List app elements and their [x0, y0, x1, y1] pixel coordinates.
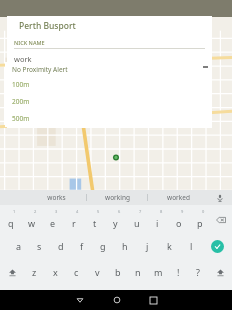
button[interactable]: Shift	[208, 259, 232, 285]
staticText: j	[146, 240, 149, 252]
button[interactable]: h	[114, 233, 136, 259]
button[interactable]: Space	[50, 285, 166, 307]
button[interactable]: ?	[188, 259, 208, 285]
button[interactable]: working	[87, 190, 147, 205]
staticText: g	[100, 240, 106, 252]
button[interactable]: ?123	[0, 285, 30, 307]
staticText: u	[134, 217, 140, 229]
staticText: ?	[196, 266, 200, 278]
staticText: 1	[13, 209, 16, 214]
button[interactable]: m	[148, 259, 168, 285]
staticText: 3	[55, 209, 58, 214]
staticText: 8	[160, 209, 163, 214]
staticText: k	[167, 240, 172, 252]
button[interactable]: Back	[61, 290, 98, 310]
staticText: y	[113, 217, 118, 229]
button[interactable]: f	[71, 233, 92, 259]
staticText: s	[37, 240, 42, 252]
button[interactable]: z	[24, 259, 45, 285]
staticText: e	[50, 217, 56, 229]
button[interactable]: j	[136, 233, 158, 259]
button[interactable]: a	[8, 233, 29, 259]
button[interactable]: Home	[98, 290, 135, 310]
staticText: c	[74, 266, 79, 278]
button[interactable]: 2	[21, 207, 42, 233]
button[interactable]: d	[50, 233, 71, 259]
button[interactable]: Emoji	[166, 285, 188, 307]
staticText: l	[190, 240, 193, 252]
button[interactable]: .	[188, 285, 204, 307]
staticText: a	[16, 240, 22, 252]
staticText: q	[8, 217, 14, 229]
staticText: working	[105, 193, 130, 202]
button[interactable]: c	[66, 259, 87, 285]
staticText: 9	[181, 209, 184, 214]
button[interactable]: 9	[168, 207, 189, 233]
staticText: n	[135, 266, 141, 278]
button[interactable]: works	[26, 190, 86, 205]
button[interactable]: 1	[0, 207, 21, 233]
button[interactable]: 3	[42, 207, 63, 233]
staticText: z	[32, 266, 37, 278]
button[interactable]: n	[128, 259, 148, 285]
button[interactable]: Shift	[0, 259, 24, 285]
button[interactable]: ,	[30, 285, 50, 307]
staticText: p	[197, 217, 203, 229]
staticText: 200m	[12, 97, 30, 106]
staticText: works	[47, 193, 66, 202]
button[interactable]: v	[87, 259, 108, 285]
button[interactable]: Enter	[202, 233, 232, 259]
button[interactable]: x	[45, 259, 66, 285]
button[interactable]: worked	[148, 190, 208, 205]
staticText: 5	[97, 209, 100, 214]
staticText: v	[95, 266, 100, 278]
staticText: 7	[139, 209, 142, 214]
staticText: h	[122, 240, 128, 252]
staticText: 6	[118, 209, 121, 214]
button[interactable]: g	[92, 233, 114, 259]
staticText: !	[177, 266, 180, 278]
staticText: 0	[202, 209, 205, 214]
button[interactable]: 7	[126, 207, 147, 233]
staticText: worked	[167, 193, 190, 202]
staticText: m	[154, 266, 163, 278]
button[interactable]: Voice input	[208, 190, 232, 205]
staticText: t	[93, 217, 97, 229]
button[interactable]: 4	[63, 207, 84, 233]
staticText: No Proximity Alert	[12, 65, 68, 74]
button[interactable]: 8	[147, 207, 168, 233]
staticText: Perth Busport	[19, 20, 76, 32]
button[interactable]: Backspace	[210, 207, 232, 233]
button[interactable]: No Proximity Alert	[5, 62, 212, 76]
staticText: i	[156, 217, 159, 229]
button[interactable]: s	[29, 233, 50, 259]
button[interactable]: !	[168, 259, 188, 285]
button[interactable]: l	[180, 233, 202, 259]
staticText: 4	[76, 209, 79, 214]
staticText: 100m	[12, 80, 30, 89]
staticText: r	[72, 217, 76, 229]
staticText: x	[53, 266, 58, 278]
button[interactable]: 500m	[5, 110, 212, 127]
button[interactable]: 6	[105, 207, 126, 233]
button[interactable]: ?123	[204, 285, 232, 307]
button[interactable]: 200m	[5, 93, 212, 110]
staticText: work	[14, 54, 32, 64]
button[interactable]: k	[158, 233, 180, 259]
button[interactable]: b	[108, 259, 128, 285]
staticText: b	[115, 266, 121, 278]
staticText: w	[28, 217, 36, 229]
staticText: 2	[34, 209, 37, 214]
button[interactable]: Recents	[135, 290, 172, 310]
button[interactable]: 5	[84, 207, 105, 233]
staticText: NICK NAME	[14, 39, 45, 46]
button[interactable]: 100m	[5, 76, 212, 93]
button[interactable]: 0	[189, 207, 210, 233]
staticText: f	[80, 240, 84, 252]
staticText: 500m	[12, 114, 30, 123]
